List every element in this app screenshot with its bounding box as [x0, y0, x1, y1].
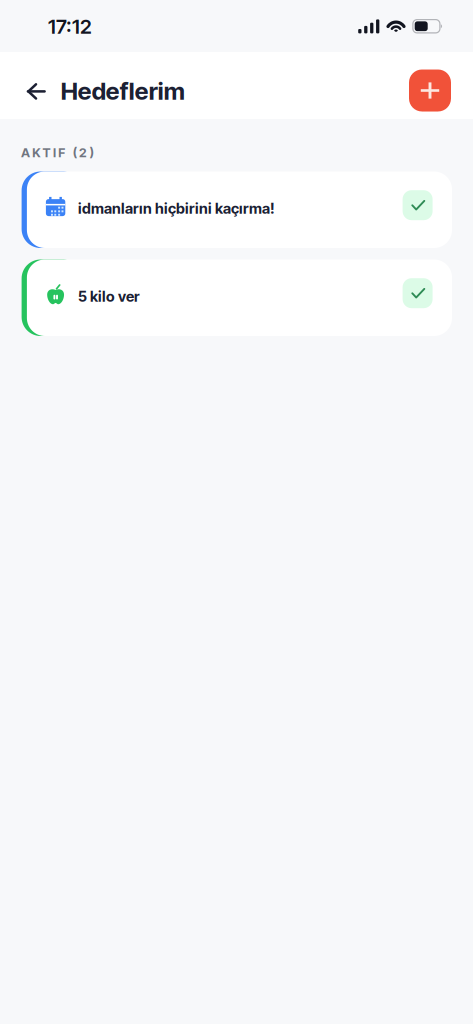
button[interactable]: 5 kilo ver	[22, 259, 452, 336]
staticText: AKTIF (2)	[21, 145, 93, 160]
staticText: idmanların hiçbirini kaçırma!	[78, 199, 275, 217]
button[interactable]: idmanların hiçbirini kaçırma!	[22, 171, 452, 248]
button[interactable]: Add goal	[409, 69, 451, 111]
button[interactable]: Back	[16, 71, 56, 111]
staticText: 5 kilo ver	[78, 287, 140, 305]
staticText: Hedeflerim	[61, 76, 185, 105]
staticText: 17:12	[48, 14, 92, 38]
